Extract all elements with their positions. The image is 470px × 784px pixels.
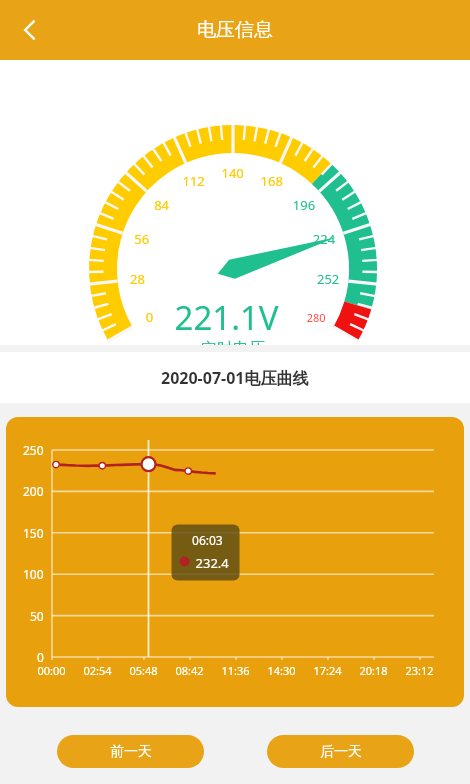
staticText: 电压信息 [197,18,273,42]
button[interactable]: 前一天 [57,735,204,768]
button[interactable]: Back [6,6,54,54]
button[interactable]: 后一天 [267,735,414,768]
staticText: 前一天 [110,743,152,761]
staticText: 后一天 [320,743,362,761]
staticText: 2020-07-01电压曲线 [161,367,309,389]
